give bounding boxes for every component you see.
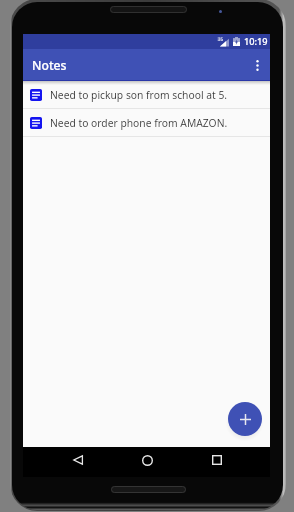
staticText: Notes [32, 57, 67, 74]
button[interactable]: Back [66, 449, 90, 471]
button[interactable]: More options [245, 49, 270, 81]
staticText: Need to order phone from AMAZON. [50, 116, 228, 130]
staticText: 10:19 [244, 35, 268, 48]
button[interactable]: Need to order phone from AMAZON. [23, 109, 270, 137]
staticText: Need to pickup son from school at 5. [50, 88, 228, 102]
button[interactable]: Need to pickup son from school at 5. [23, 81, 270, 109]
button[interactable]: Recent apps [205, 449, 229, 471]
button[interactable]: Home [135, 449, 159, 471]
button[interactable]: Add note [228, 402, 262, 436]
